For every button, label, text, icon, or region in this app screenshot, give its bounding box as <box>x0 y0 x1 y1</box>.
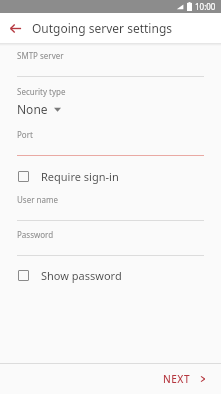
other: Next <box>199 375 207 383</box>
staticText: Require sign-in <box>41 169 119 184</box>
staticText: None <box>17 101 48 117</box>
button[interactable]: Security type <box>0 86 221 117</box>
button[interactable]: Show password <box>0 265 221 286</box>
button[interactable]: NEXT <box>149 366 221 392</box>
button[interactable]: Back <box>4 17 26 39</box>
staticText: 10:00 <box>195 1 216 12</box>
staticText: Password <box>17 229 54 240</box>
button[interactable]: Password <box>0 229 221 256</box>
staticText: Show password <box>41 268 122 283</box>
staticText: Outgoing server settings <box>32 20 173 36</box>
staticText: Port <box>17 129 33 140</box>
staticText: SMTP server <box>17 50 64 61</box>
button[interactable]: Require sign-in <box>0 166 221 187</box>
button[interactable]: SMTP server <box>0 50 221 77</box>
button[interactable]: User name <box>0 194 221 221</box>
button[interactable]: Port <box>0 129 221 156</box>
staticText: NEXT <box>163 372 191 386</box>
staticText: User name <box>17 194 58 205</box>
staticText: Security type <box>17 86 66 97</box>
